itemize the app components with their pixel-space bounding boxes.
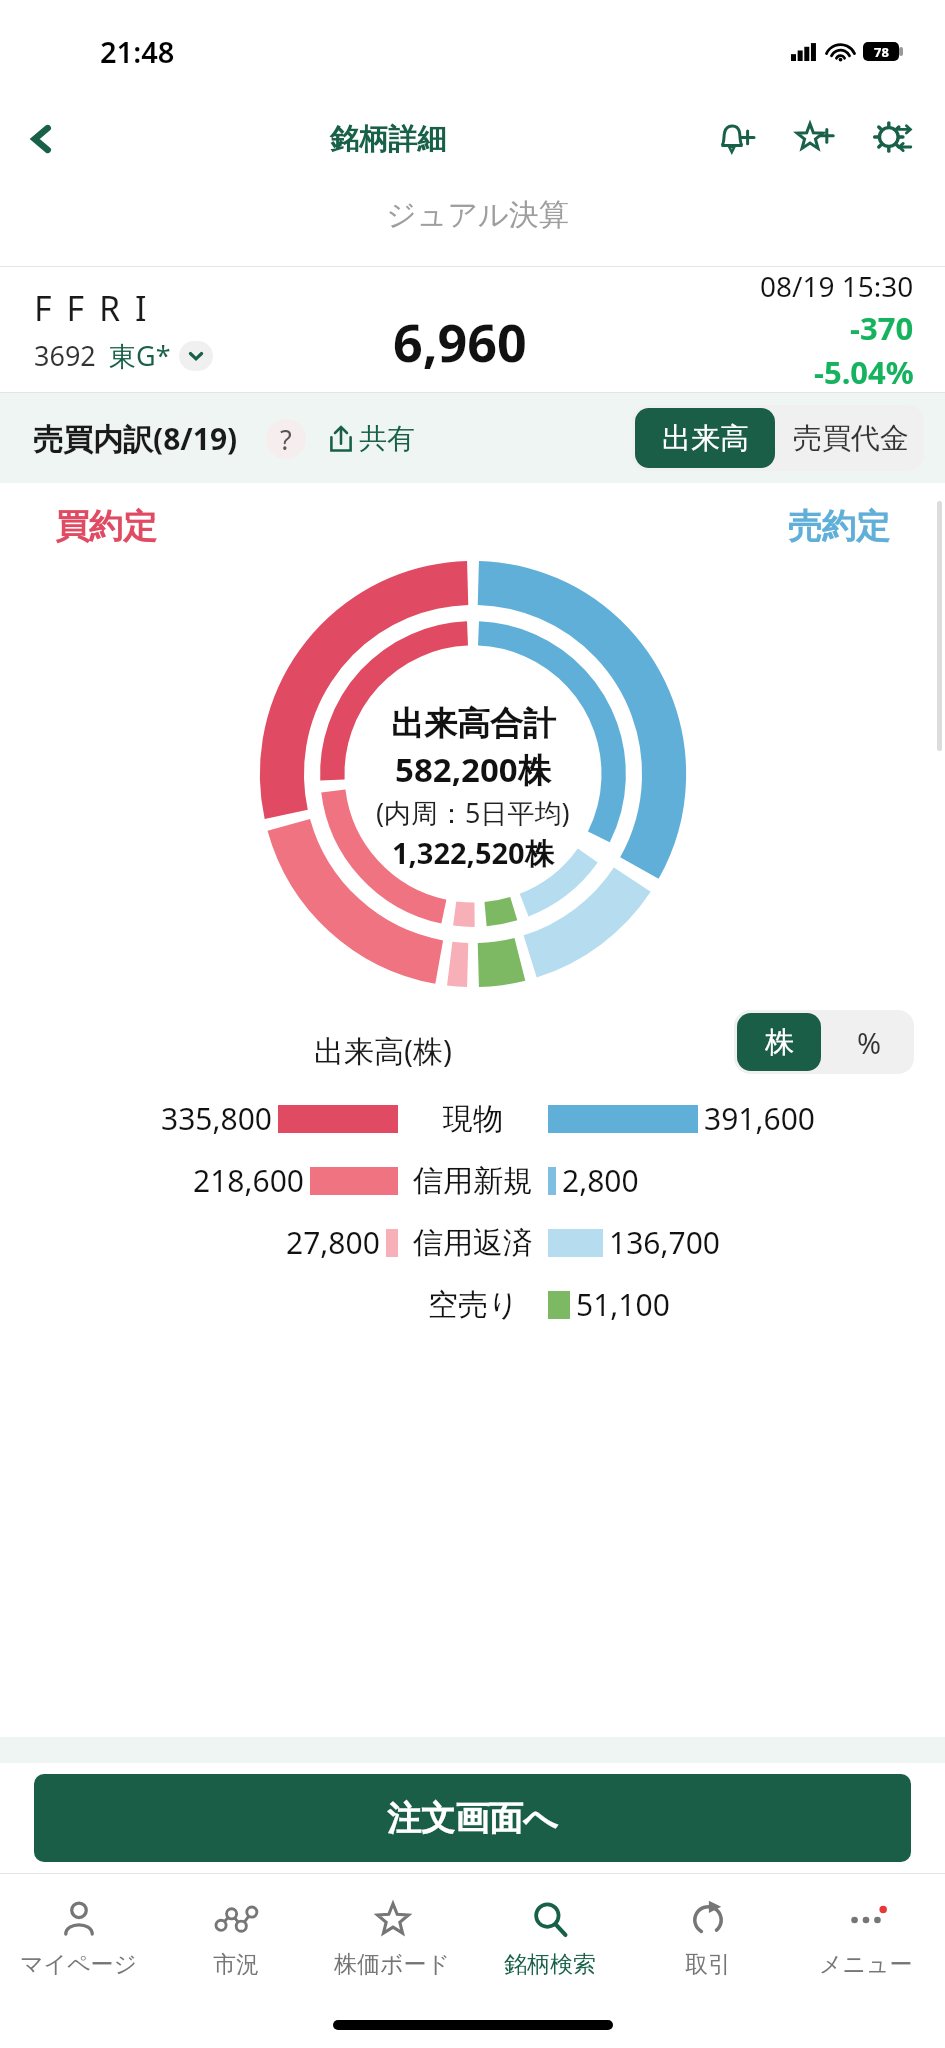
button[interactable]: 共有 — [326, 421, 415, 456]
staticText: 売約定 — [788, 505, 890, 548]
staticText: -5.04% — [814, 351, 914, 392]
button[interactable]: 売買代金 — [778, 405, 924, 471]
button[interactable]: Settings — [859, 106, 925, 172]
staticText: -370 — [850, 307, 914, 349]
staticText: 出来高(株) — [314, 1030, 452, 1071]
staticText: 注文画面へ — [387, 1797, 558, 1840]
staticText: 3692 — [34, 337, 96, 374]
button[interactable]: Add to watchlist — [781, 106, 847, 172]
button[interactable]: 出来高 — [635, 408, 775, 468]
staticText: (内周：5日平均) — [376, 794, 570, 831]
staticText: 銘柄検索 — [504, 1950, 596, 1979]
staticText: 現物 — [443, 1100, 503, 1138]
button[interactable]: 取引 — [629, 1874, 787, 2002]
staticText: 1,322,520株 — [392, 833, 554, 873]
staticText: % — [857, 1023, 882, 1062]
staticText: 21:48 — [100, 32, 175, 71]
button[interactable]: 株価ボード — [314, 1874, 471, 2002]
staticText: 東G* — [109, 337, 171, 374]
staticText: 株価ボード — [334, 1950, 451, 1979]
staticText: 391,600 — [704, 1098, 815, 1139]
staticText: 信用新規 — [413, 1162, 533, 1200]
staticText: 335,800 — [161, 1098, 272, 1139]
staticText: 株 — [765, 1024, 794, 1061]
button[interactable]: 注文画面へ — [34, 1774, 911, 1862]
button[interactable]: 市況 — [157, 1874, 314, 2002]
staticText: 共有 — [359, 421, 415, 456]
button[interactable]: ジュアル決算 — [9, 182, 945, 266]
staticText: ジュアル決算 — [386, 196, 569, 234]
staticText: ? — [280, 421, 292, 458]
staticText: 136,700 — [609, 1222, 720, 1263]
staticText: 出来高 — [662, 420, 749, 457]
staticText: F F R I — [34, 285, 150, 331]
staticText: 市況 — [213, 1950, 259, 1979]
staticText: 08/19 15:30 — [760, 267, 914, 305]
staticText: 6,960 — [393, 306, 527, 377]
staticText: 買約定 — [55, 505, 157, 548]
staticText: 売買内訳(8/19) — [33, 418, 238, 459]
button[interactable]: % — [824, 1010, 914, 1074]
button[interactable]: Back — [6, 103, 78, 175]
button[interactable]: メニュー — [787, 1874, 945, 2002]
button[interactable]: 株 — [737, 1013, 821, 1071]
button[interactable]: Market selector — [179, 341, 213, 371]
button[interactable]: Help — [266, 419, 306, 459]
button[interactable]: マイページ — [0, 1874, 157, 2002]
staticText: マイページ — [20, 1950, 138, 1979]
staticText: 信用返済 — [413, 1224, 533, 1262]
staticText: 空売り — [428, 1286, 519, 1324]
staticText: 218,600 — [193, 1160, 304, 1201]
staticText: 売買代金 — [793, 420, 909, 457]
staticText: 出来高合計 — [391, 703, 556, 745]
staticText: 取引 — [685, 1950, 731, 1979]
staticText: 582,200株 — [395, 747, 551, 792]
staticText: 78 — [874, 43, 889, 61]
staticText: 銘柄詳細 — [330, 121, 446, 158]
staticText: メニュー — [819, 1950, 913, 1979]
button[interactable]: Add alert — [703, 106, 769, 172]
button[interactable]: 銘柄検索 — [471, 1874, 629, 2002]
staticText: 27,800 — [286, 1222, 380, 1263]
staticText: 2,800 — [562, 1160, 639, 1201]
staticText: 51,100 — [576, 1284, 670, 1325]
